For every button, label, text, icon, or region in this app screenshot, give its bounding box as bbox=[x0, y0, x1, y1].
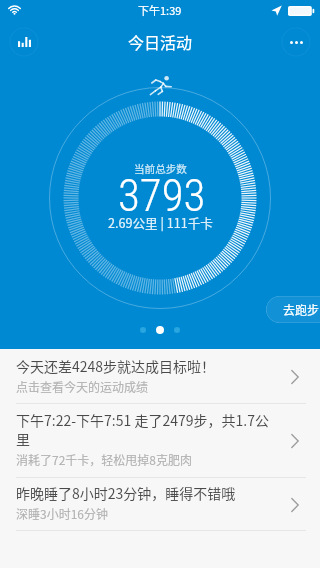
staticText: 昨晚睡了8小时23分钟，睡得不错哦 bbox=[16, 483, 236, 503]
button[interactable]: 去跑步 bbox=[266, 296, 320, 323]
staticText: 下午1:39 bbox=[138, 2, 182, 18]
button[interactable]: 下午7:22-下午7:51 走了2479步，共1.7公里 bbox=[0, 404, 320, 478]
staticText: 消耗了72千卡，轻松甩掉8克肥肉 bbox=[16, 451, 192, 468]
staticText: 当前总步数 bbox=[134, 161, 187, 176]
staticText: 今天还差4248步就达成目标啦！ bbox=[16, 356, 216, 376]
staticText: 下午7:22-下午7:51 走了2479步，共1.7公里 bbox=[16, 410, 278, 449]
button[interactable]: More options bbox=[278, 24, 314, 60]
button[interactable]: 昨晚睡了8小时23分钟，睡得不错哦 bbox=[0, 478, 320, 531]
button[interactable]: 今天还差4248步就达成目标啦！ bbox=[0, 350, 320, 404]
staticText: 3793 bbox=[118, 169, 206, 222]
staticText: 去跑步 bbox=[283, 301, 320, 318]
staticText: 2.69公里 | 111千卡 bbox=[108, 213, 213, 231]
button[interactable]: Statistics bbox=[6, 24, 42, 60]
staticText: 点击查看今天的运动成绩 bbox=[16, 378, 149, 395]
staticText: 今日活动 bbox=[128, 30, 193, 53]
staticText: 深睡3小时16分钟 bbox=[16, 505, 108, 522]
